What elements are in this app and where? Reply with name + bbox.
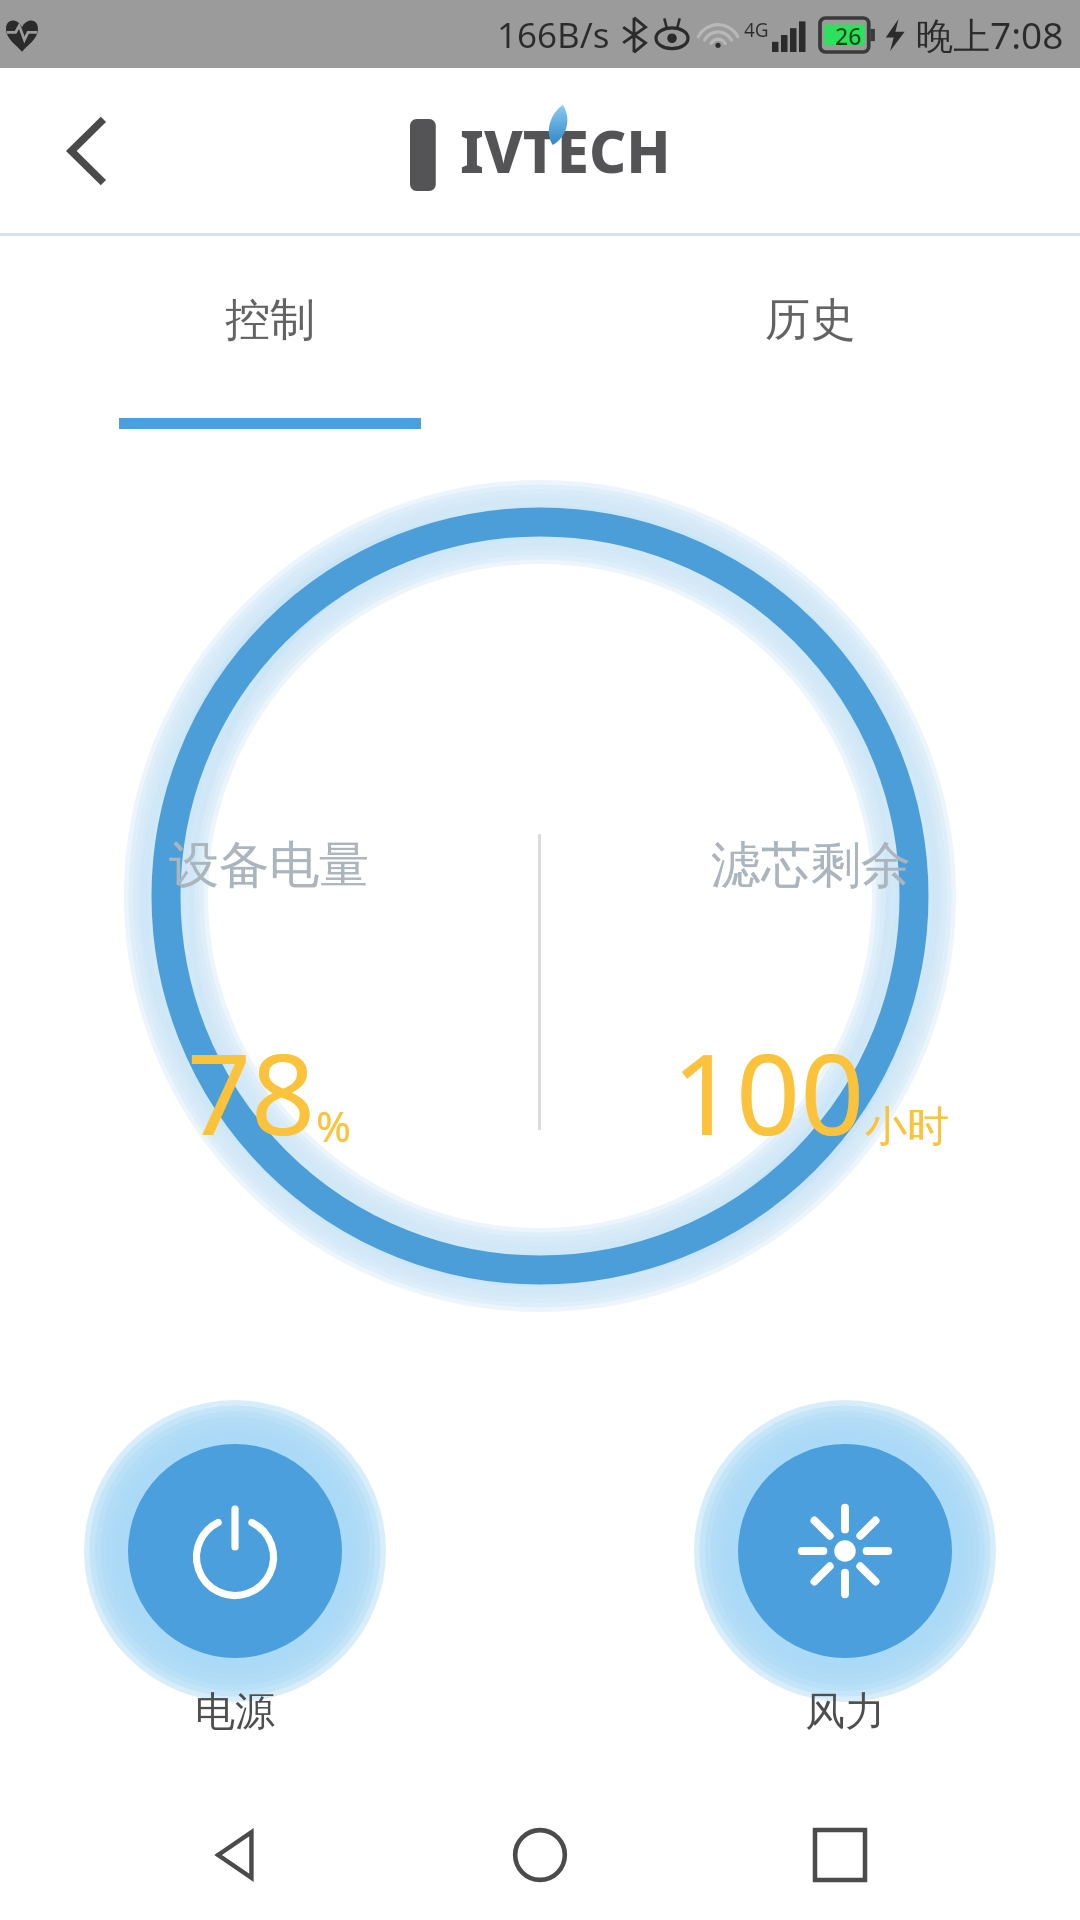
staticText: 166B/s [497,11,610,59]
staticText: 小时 [865,1101,949,1154]
staticText: 26 [835,20,862,51]
button[interactable]: 控制 [0,236,540,451]
staticText: 100 [672,1015,865,1168]
button[interactable]: Home [480,1795,600,1915]
staticText: 风力 [805,1686,885,1736]
staticText: 4G [744,17,769,43]
staticText: 晚上7:08 [916,9,1064,60]
staticText: 滤芯剩余 [711,834,911,897]
staticText: 设备电量 [169,834,369,897]
button[interactable]: Recents [780,1795,900,1915]
button[interactable]: Back [42,105,134,197]
staticText: % [316,1097,351,1154]
button[interactable]: 历史 [540,236,1080,451]
staticText: IVTECH [460,111,671,190]
staticText: 78 [187,1015,316,1168]
staticText: 电源 [195,1686,275,1736]
button[interactable]: Back [180,1795,300,1915]
staticText: 控制 [225,292,315,349]
staticText: 历史 [765,292,855,349]
button[interactable]: Fan speed [738,1444,952,1658]
button[interactable]: Power [128,1444,342,1658]
